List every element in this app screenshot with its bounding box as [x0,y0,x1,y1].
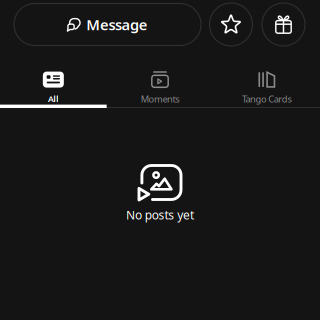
staticText: Message [86,15,148,34]
staticText: No posts yet [126,207,194,223]
staticText: All [48,93,59,105]
button[interactable]: Message [14,3,201,45]
button[interactable]: Favorites [208,3,253,46]
button[interactable]: All [0,68,107,108]
staticText: Tango Cards [242,93,291,105]
button[interactable]: Tango Cards [213,68,320,108]
button[interactable]: Moments [107,68,213,108]
button[interactable]: Gifts [261,3,306,46]
staticText: Moments [141,93,179,105]
